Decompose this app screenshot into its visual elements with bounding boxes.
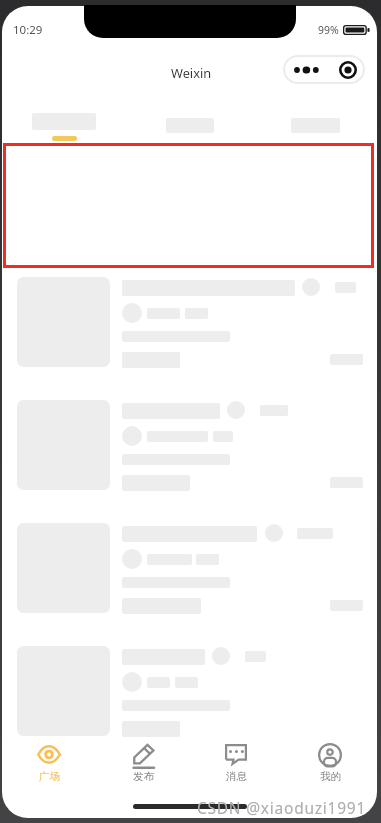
button[interactable]: 广场 (4, 736, 94, 790)
button[interactable] (4, 265, 376, 379)
staticText: 10:29 (13, 22, 43, 38)
button[interactable]: 消息 (191, 736, 281, 790)
staticText: 99% (318, 23, 339, 37)
other: Location (330, 55, 365, 84)
button[interactable] (4, 634, 376, 748)
button[interactable]: 我的 (285, 736, 375, 790)
staticText: Weixin (171, 64, 212, 81)
button[interactable]: More (283, 55, 365, 84)
staticText: CSDN @xiaoduzi1991 (197, 797, 366, 818)
staticText: 我的 (320, 770, 341, 783)
button[interactable] (4, 511, 376, 625)
staticText: 发布 (133, 770, 154, 783)
button[interactable] (4, 388, 376, 502)
other: More (283, 55, 330, 84)
button[interactable]: 发布 (98, 736, 188, 790)
staticText: 广场 (39, 770, 60, 783)
staticText: 消息 (226, 770, 247, 783)
